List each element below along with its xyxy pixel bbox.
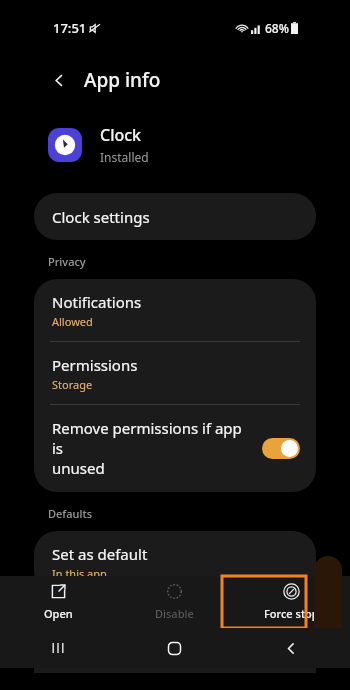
button[interactable]: Recents	[0, 628, 116, 668]
staticText: Storage	[52, 377, 93, 392]
staticText: 68%	[265, 20, 289, 36]
staticText: Privacy	[48, 254, 86, 269]
button[interactable]: Mobile data	[34, 633, 316, 673]
button[interactable]: Back	[233, 628, 350, 668]
staticText: Notifications	[52, 292, 142, 312]
staticText: 17:51	[53, 19, 87, 37]
staticText: Mobile data	[52, 643, 136, 663]
button[interactable]: Force stop	[233, 576, 350, 628]
button[interactable]: Back	[44, 65, 74, 95]
staticText: Clock	[100, 124, 142, 146]
staticText: Installed	[100, 149, 149, 165]
staticText: Disable	[155, 606, 194, 621]
button[interactable]	[262, 438, 300, 459]
staticText: Defaults	[48, 506, 92, 521]
button[interactable]: Remove permissions if app is unused	[34, 405, 316, 492]
button[interactable]: Open	[0, 576, 116, 628]
staticText: In this app	[52, 566, 107, 581]
staticText: Allowed	[52, 314, 93, 329]
staticText: Permissions	[52, 355, 138, 375]
staticText: Force stop	[264, 606, 319, 621]
button[interactable]: Notifications	[34, 279, 316, 341]
button[interactable]: Permissions	[34, 342, 316, 404]
staticText: Set as default	[52, 544, 148, 564]
button[interactable]: Clock settings	[34, 193, 316, 240]
staticText: Remove permissions if app is unused	[52, 418, 254, 478]
staticText: App info	[84, 67, 161, 93]
staticText: Usage	[48, 608, 81, 623]
staticText: Open	[44, 606, 73, 621]
button[interactable]: Disable	[116, 576, 233, 628]
staticText: Clock settings	[52, 207, 150, 227]
button[interactable]: Set as default	[34, 531, 316, 594]
button[interactable]: Home	[116, 628, 233, 668]
